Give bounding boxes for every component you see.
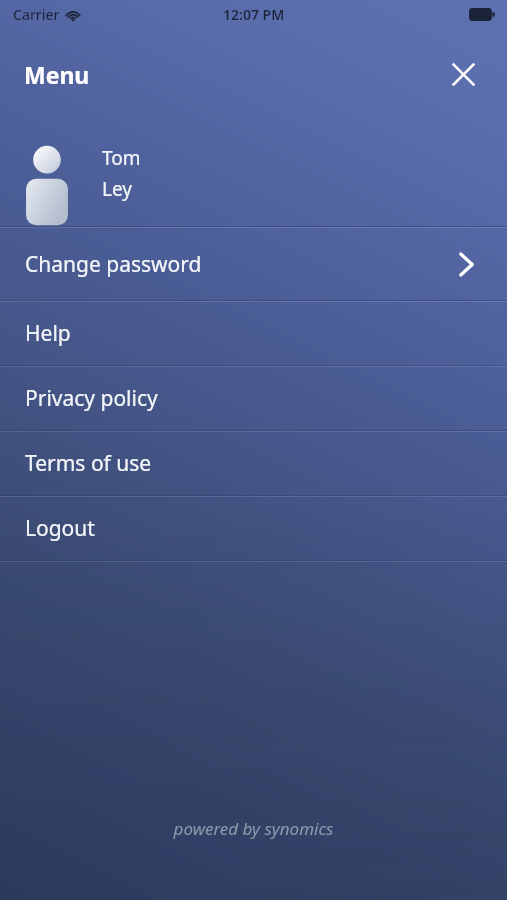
staticText: Terms of use: [25, 449, 152, 478]
button[interactable]: Change password: [0, 228, 507, 300]
staticText: Tom: [102, 145, 141, 171]
staticText: Menu: [24, 59, 90, 90]
button[interactable]: Privacy policy: [0, 367, 507, 430]
staticText: Privacy policy: [25, 384, 158, 413]
staticText: Ley: [102, 176, 132, 202]
button[interactable]: Help: [0, 302, 507, 365]
button[interactable]: Close menu: [441, 52, 485, 96]
staticText: 12:07 PM: [223, 5, 285, 24]
staticText: powered by synomics: [0, 817, 507, 840]
button[interactable]: Tom: [0, 120, 507, 226]
staticText: Carrier: [13, 5, 60, 24]
button[interactable]: Terms of use: [0, 432, 507, 495]
button[interactable]: Logout: [0, 497, 507, 560]
staticText: Help: [25, 319, 71, 348]
staticText: Logout: [25, 514, 95, 543]
staticText: Change password: [25, 250, 202, 279]
